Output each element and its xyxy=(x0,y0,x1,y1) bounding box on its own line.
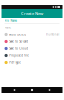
staticText: Create New xyxy=(21,11,43,16)
button[interactable]: Proposed file xyxy=(1,52,62,59)
staticText: Auto Detect xyxy=(9,33,26,36)
staticText: Thumbnail xyxy=(45,33,59,36)
staticText: File Name xyxy=(4,19,17,22)
button[interactable]: Home xyxy=(27,87,36,92)
button[interactable]: Recents xyxy=(45,87,54,92)
staticText: Proposed file xyxy=(9,54,29,57)
button[interactable]: Save to SD card xyxy=(1,38,62,45)
button[interactable]: Auto Detect xyxy=(1,31,62,38)
staticText: Pdf Type xyxy=(9,61,21,64)
staticText: Save to Cloud xyxy=(9,47,28,50)
button[interactable]: Save to Cloud xyxy=(1,45,62,52)
button[interactable]: Pdf Type xyxy=(1,59,62,66)
staticText: Name xyxy=(4,26,11,29)
staticText: Save to SD card xyxy=(9,40,28,43)
button[interactable]: Back xyxy=(10,87,19,92)
